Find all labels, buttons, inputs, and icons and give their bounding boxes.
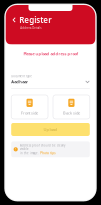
- staticText: Document type: [11, 74, 32, 78]
- button[interactable]: Back: [11, 16, 17, 24]
- staticText: Address proof should be clearly visible: [20, 144, 65, 151]
- button[interactable]: Front side: [11, 95, 48, 119]
- button[interactable]: Photo tips: [40, 151, 55, 155]
- staticText: Photo tips: [40, 151, 55, 155]
- staticText: Register: [19, 15, 51, 25]
- button[interactable]: Aadhaar: [11, 78, 90, 88]
- staticText: Back side: [63, 110, 80, 116]
- staticText: Aadhaar: [11, 79, 28, 84]
- staticText: !: [15, 148, 16, 151]
- staticText: Please upload address proof: [23, 51, 77, 56]
- staticText: Front side: [21, 110, 38, 116]
- button[interactable]: Back side: [53, 95, 90, 119]
- staticText: in the image.: [20, 151, 39, 155]
- button[interactable]: Upload: [11, 123, 90, 136]
- staticText: Address Details: [20, 26, 41, 30]
- staticText: Upload: [43, 127, 57, 132]
